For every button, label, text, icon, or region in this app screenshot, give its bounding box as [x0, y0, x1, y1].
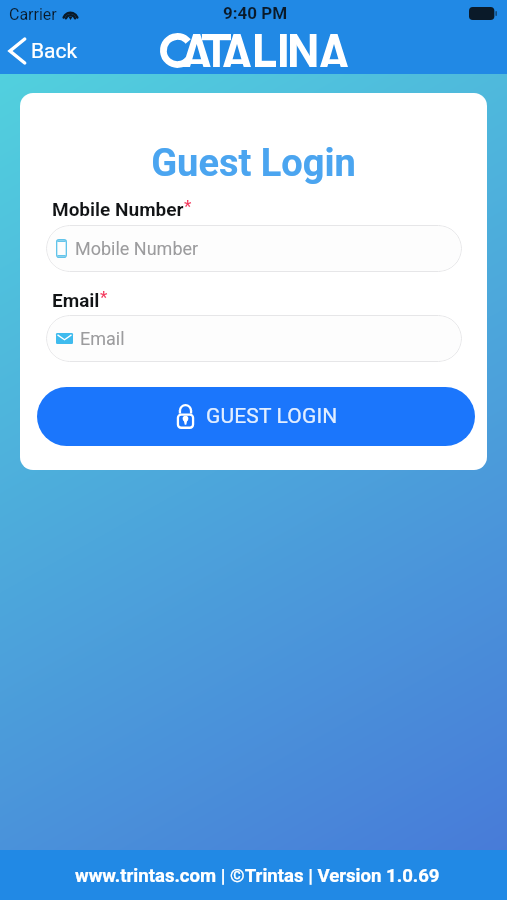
staticText: 9:40 PM: [223, 3, 288, 23]
staticText: Mobile Number: [75, 238, 199, 259]
staticText: www.trintas.com | ©Trintas | Version 1.0…: [75, 865, 440, 887]
staticText: *: [184, 197, 192, 216]
staticText: Email: [52, 289, 100, 311]
staticText: Mobile Number: [52, 198, 184, 220]
button[interactable]: Back: [4, 34, 82, 68]
button[interactable]: GUEST LOGIN: [37, 387, 475, 446]
staticText: Email: [80, 328, 125, 349]
staticText: Back: [31, 39, 78, 64]
staticText: Carrier: [9, 5, 57, 24]
staticText: *: [100, 288, 108, 307]
staticText: GUEST LOGIN: [206, 404, 338, 429]
button[interactable]: Email: [46, 315, 462, 362]
button[interactable]: Mobile Number: [46, 225, 462, 272]
staticText: Guest Login: [20, 141, 487, 186]
